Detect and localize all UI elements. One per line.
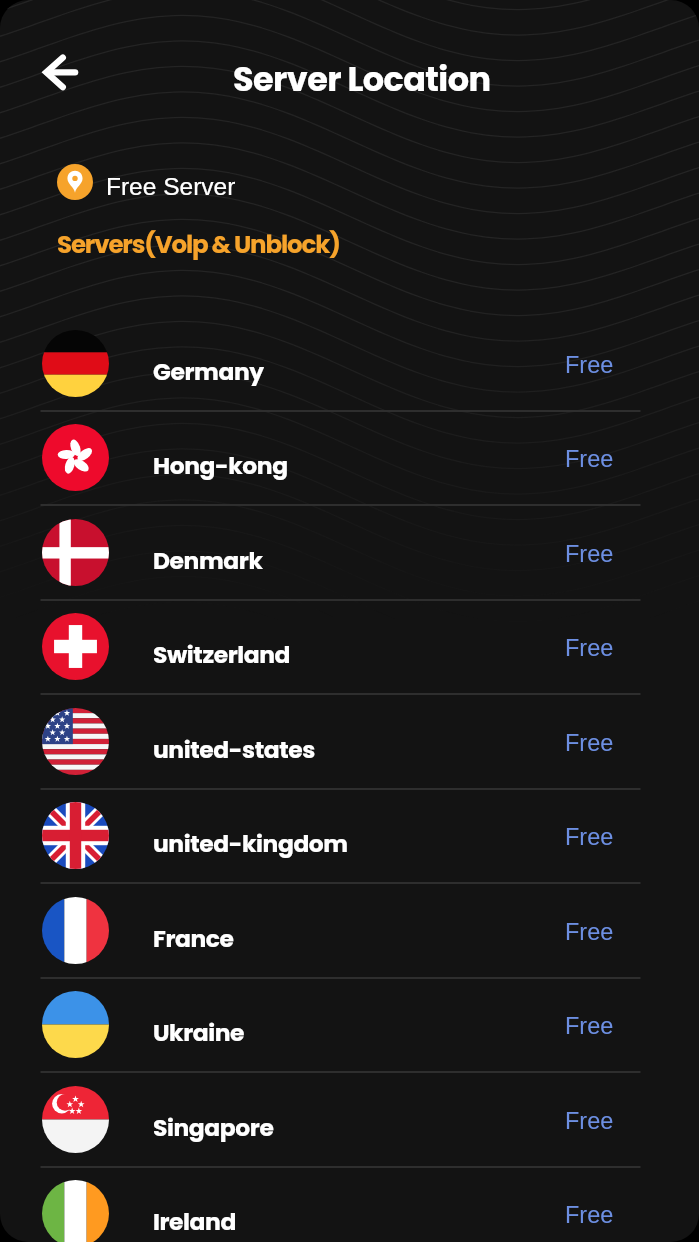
- staticText: Server Location: [233, 56, 491, 103]
- staticText: Free: [565, 1202, 614, 1228]
- staticText: Free: [565, 352, 614, 378]
- staticText: Free: [565, 541, 614, 567]
- staticText: Singapore: [153, 1111, 274, 1144]
- button[interactable]: Ireland: [0, 1167, 699, 1242]
- staticText: Ireland: [153, 1205, 236, 1238]
- staticText: Free: [565, 1108, 614, 1134]
- button[interactable]: Ukraine: [0, 978, 699, 1073]
- button[interactable]: Back: [29, 44, 91, 106]
- staticText: Servers(Volp & Unblock): [57, 227, 340, 261]
- button[interactable]: Denmark: [0, 506, 699, 601]
- staticText: Free: [565, 635, 614, 661]
- staticText: Switzerland: [153, 638, 291, 671]
- button[interactable]: united-kingdom: [0, 789, 699, 884]
- staticText: united-kingdom: [153, 827, 348, 860]
- button[interactable]: Hong-kong: [0, 411, 699, 506]
- staticText: Germany: [153, 355, 264, 388]
- staticText: France: [153, 922, 234, 955]
- button[interactable]: France: [0, 884, 699, 979]
- button[interactable]: Switzerland: [0, 600, 699, 695]
- staticText: Free: [565, 919, 614, 945]
- staticText: Ukraine: [153, 1016, 245, 1049]
- staticText: Denmark: [153, 544, 263, 577]
- staticText: Hong-kong: [153, 449, 288, 482]
- staticText: Free: [565, 1013, 614, 1039]
- button[interactable]: Singapore: [0, 1073, 699, 1168]
- staticText: Free: [565, 446, 614, 472]
- button[interactable]: united-states: [0, 695, 699, 790]
- staticText: Free: [565, 824, 614, 850]
- button[interactable]: Germany: [0, 317, 699, 412]
- staticText: Free: [565, 730, 614, 756]
- staticText: Free Server: [106, 173, 236, 200]
- staticText: united-states: [153, 733, 315, 766]
